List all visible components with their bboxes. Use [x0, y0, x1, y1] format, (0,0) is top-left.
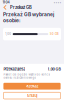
staticText: Przekaż GB [10, 5, 32, 10]
button[interactable]: Przekaż [3, 83, 61, 90]
staticText: 50 GB [50, 32, 59, 36]
staticText: 1,00 [5, 32, 11, 36]
staticText: 11:04 [3, 0, 10, 4]
staticText: •••• [53, 0, 61, 4]
staticText: Anuluj [26, 93, 37, 98]
button[interactable]: Anuluj [3, 92, 61, 99]
staticText: Przekaż GB wybranej osobie: [3, 11, 54, 23]
staticText: Pakiet GB będzie ważny do końca okresu r… [3, 73, 49, 79]
staticText: 1,00 GB [48, 67, 61, 71]
staticText: Przekazujesz [3, 67, 25, 71]
button[interactable]: Back [2, 4, 8, 10]
staticText: Przekaż [25, 84, 38, 88]
